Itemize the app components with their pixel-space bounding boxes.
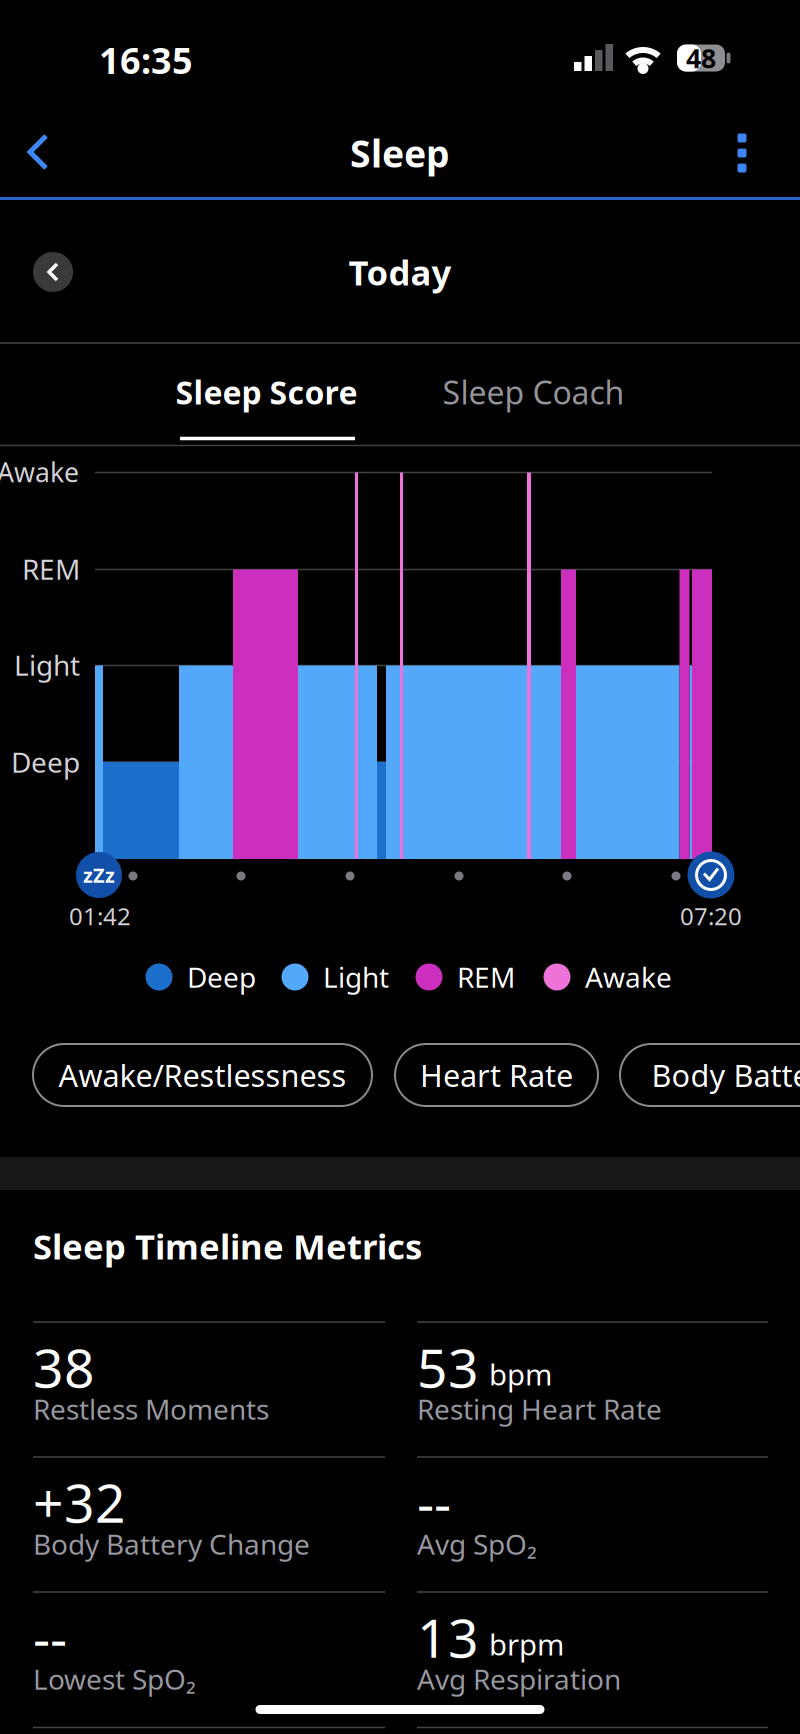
staticText: bpm — [489, 1354, 552, 1393]
staticText: Awake — [585, 958, 672, 996]
staticText: Lowest SpO₂ — [33, 1660, 196, 1698]
staticText: Today — [348, 249, 451, 295]
staticText: Deep — [11, 743, 80, 781]
staticText: Body Battery Change — [33, 1525, 310, 1563]
staticText: Deep — [187, 958, 256, 996]
button[interactable]: More options — [720, 130, 764, 176]
button[interactable]: Back — [16, 129, 60, 175]
staticText: REM — [22, 550, 80, 588]
button[interactable]: Sleep Score — [133, 344, 400, 440]
button[interactable]: Body Battery — [620, 1044, 800, 1106]
staticText: -- — [417, 1467, 451, 1537]
button[interactable]: Heart Rate — [395, 1044, 598, 1106]
staticText: Sleep Timeline Metrics — [33, 1223, 422, 1269]
staticText: Sleep Score — [175, 371, 357, 413]
staticText: Body Battery — [651, 1055, 800, 1095]
staticText: Light — [14, 646, 80, 684]
staticText: Light — [323, 958, 389, 996]
staticText: Awake/Restlessness — [58, 1055, 346, 1095]
staticText: 53 — [417, 1332, 479, 1402]
staticText: Avg Respiration — [417, 1660, 621, 1698]
button[interactable]: Awake/Restlessness — [33, 1044, 372, 1106]
staticText: +32 — [33, 1467, 126, 1537]
staticText: Heart Rate — [420, 1055, 573, 1095]
button[interactable]: Previous day — [33, 252, 73, 292]
staticText: 48 — [686, 40, 716, 76]
staticText: Sleep Coach — [442, 371, 624, 413]
staticText: Awake — [0, 454, 79, 490]
staticText: REM — [457, 958, 515, 996]
staticText: 01:42 — [69, 900, 131, 932]
staticText: Resting Heart Rate — [417, 1390, 662, 1428]
staticText: Restless Moments — [33, 1390, 269, 1428]
staticText: 16:35 — [99, 36, 193, 84]
staticText: Sleep — [350, 128, 450, 178]
staticText: 38 — [33, 1332, 95, 1402]
staticText: zZz — [83, 862, 115, 888]
staticText: -- — [33, 1602, 67, 1672]
staticText: 13 — [417, 1602, 479, 1672]
staticText: brpm — [489, 1624, 564, 1663]
staticText: Avg SpO₂ — [417, 1525, 537, 1563]
button[interactable]: Sleep Coach — [400, 344, 667, 440]
staticText: 07:20 — [680, 900, 742, 932]
